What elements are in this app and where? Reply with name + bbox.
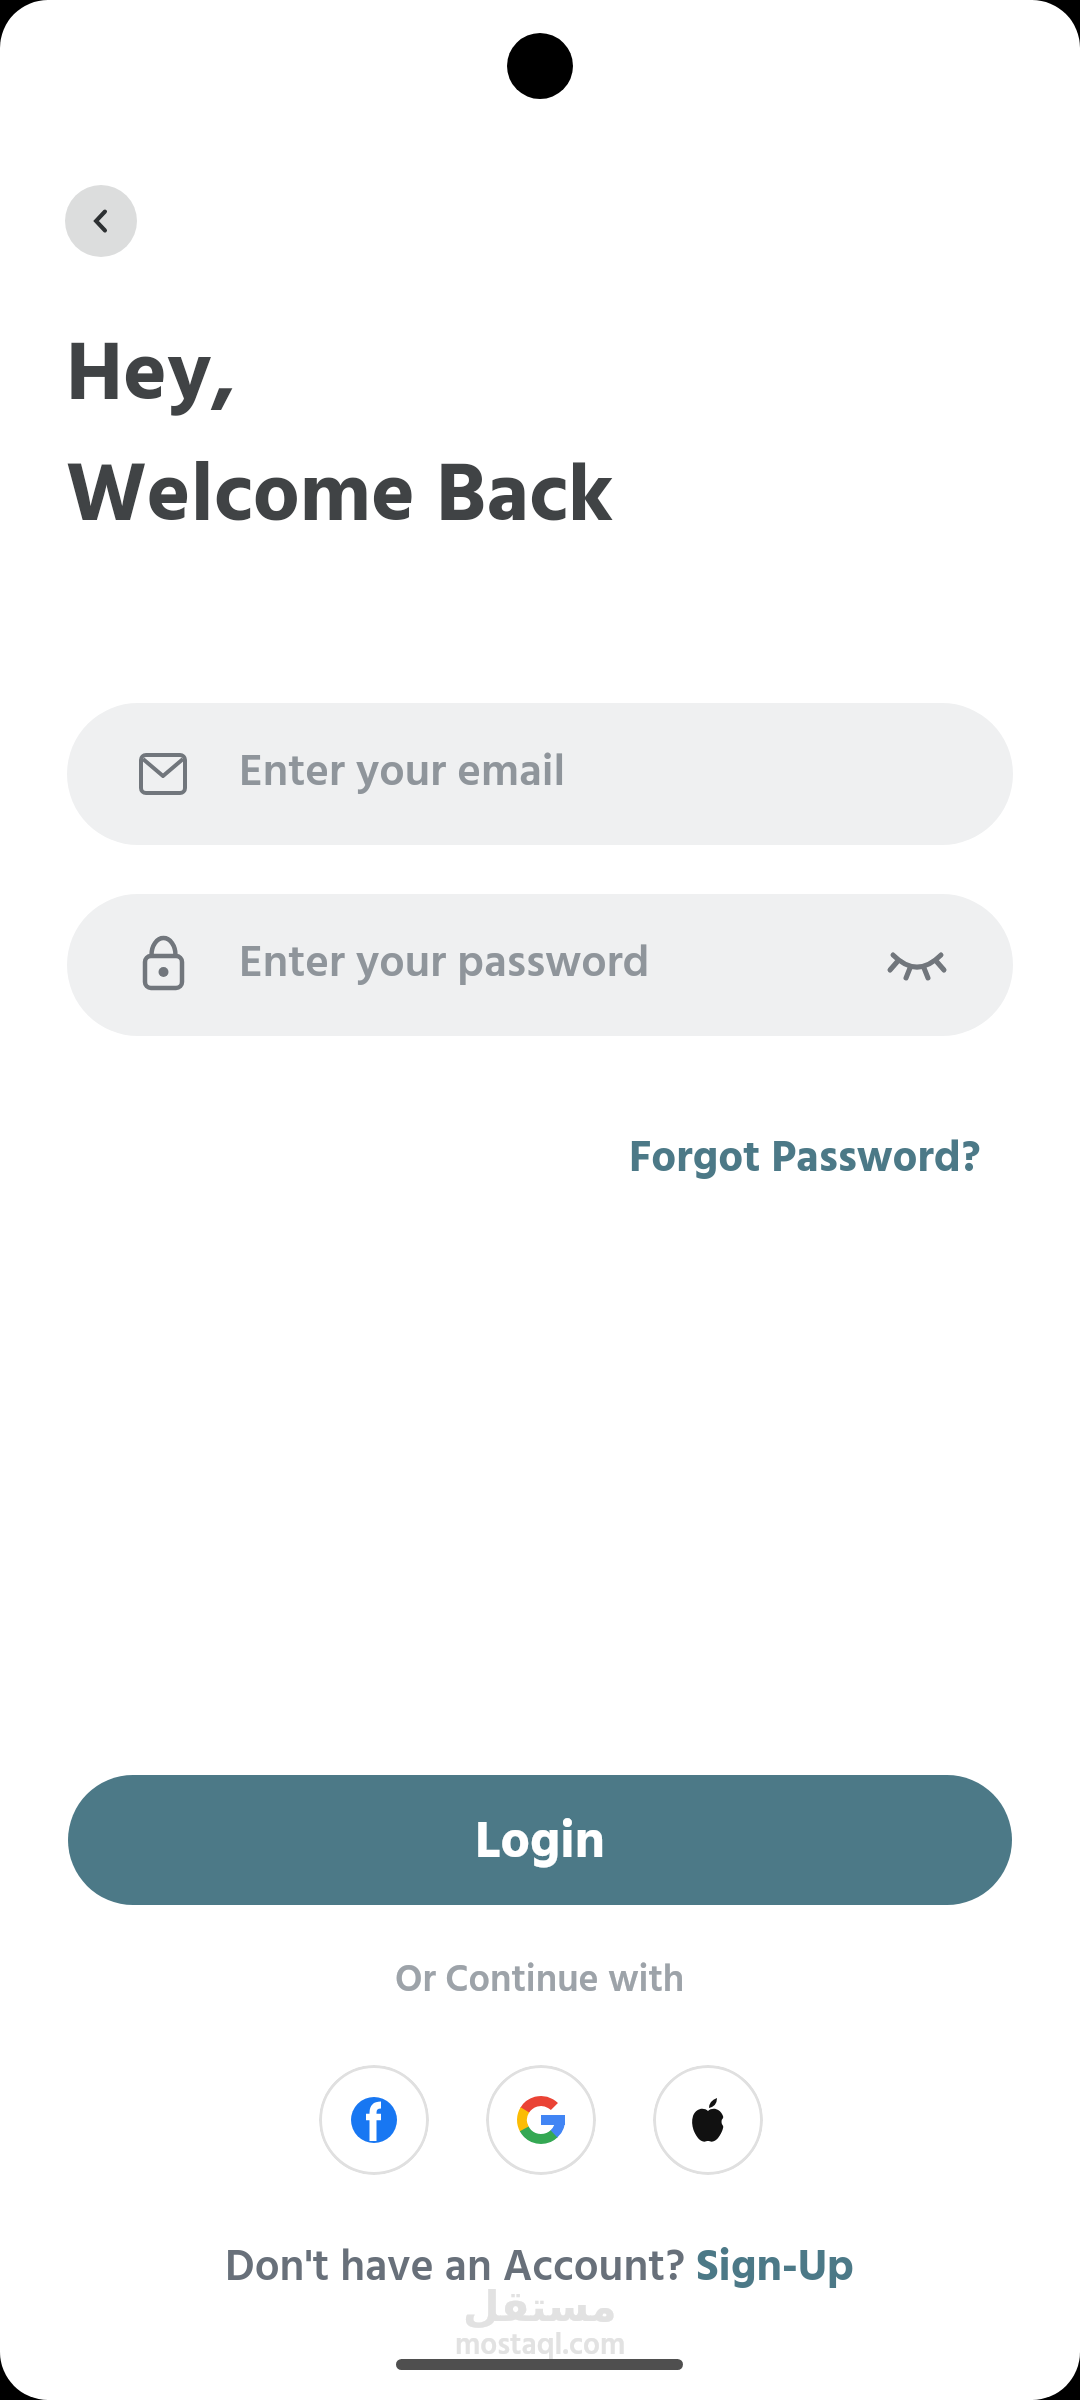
button[interactable] [653, 2065, 763, 2175]
button[interactable] [319, 2065, 429, 2175]
staticText: Login [475, 1802, 605, 1885]
button[interactable]: Forgot Password? [629, 1125, 981, 1195]
staticText: مستقل [463, 2282, 617, 2331]
button[interactable]: Sign-Up [696, 2234, 855, 2304]
staticText: Enter your email [239, 738, 566, 810]
button[interactable] [65, 185, 137, 257]
button[interactable]: Login [68, 1775, 1012, 1905]
staticText: mostaql.com [455, 2322, 626, 2370]
staticText: Don't have an Account? [225, 2234, 696, 2304]
staticText: Enter your password [239, 929, 650, 1001]
staticText: Hey, Welcome Back [66, 311, 614, 565]
button[interactable]: Enter your email [67, 703, 1013, 845]
staticText: Or Continue with [395, 1951, 685, 2012]
button[interactable] [486, 2065, 596, 2175]
button[interactable]: Enter your password [67, 894, 1013, 1036]
